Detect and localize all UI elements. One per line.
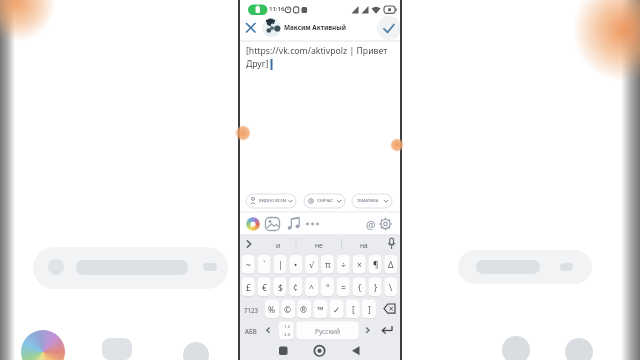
staticText: ~: [246, 259, 251, 271]
staticText: ^: [309, 282, 314, 294]
button[interactable]: |: [274, 255, 287, 274]
staticText: ✓: [333, 305, 341, 315]
button[interactable]: [242, 237, 255, 251]
staticText: ]: [368, 304, 371, 316]
button[interactable]: 7123: [239, 300, 263, 319]
button[interactable]: АБВ: [239, 322, 263, 340]
staticText: •: [294, 259, 298, 271]
button[interactable]: [304, 194, 345, 208]
button[interactable]: [246, 194, 296, 208]
button[interactable]: [377, 16, 401, 40]
button[interactable]: ™: [313, 300, 327, 319]
button[interactable]: `: [258, 255, 271, 274]
button[interactable]: [262, 18, 281, 37]
button[interactable]: [246, 217, 260, 231]
button[interactable]: ÷: [337, 255, 350, 274]
button[interactable]: ®: [297, 300, 311, 319]
button[interactable]: {: [353, 278, 366, 297]
button[interactable]: [285, 215, 302, 231]
button[interactable]: 1 2: [279, 322, 294, 332]
button[interactable]: }: [369, 278, 382, 297]
button[interactable]: [265, 217, 280, 231]
button[interactable]: π: [321, 255, 334, 274]
staticText: ТЕМАТИКА: [357, 198, 379, 204]
button[interactable]: ×: [353, 255, 366, 274]
staticText: 7123: [244, 306, 259, 314]
button[interactable]: √: [305, 255, 318, 274]
button[interactable]: Максим Активный: [284, 23, 346, 32]
button[interactable]: °: [321, 278, 334, 297]
staticText: [: [352, 304, 355, 316]
staticText: на: [360, 241, 368, 250]
button[interactable]: €: [258, 278, 271, 297]
staticText: |: [278, 259, 283, 271]
button[interactable]: $: [274, 278, 287, 297]
button[interactable]: ~: [242, 255, 255, 274]
staticText: π: [325, 259, 331, 271]
staticText: 3 4: [284, 332, 290, 338]
staticText: %: [268, 304, 276, 316]
staticText: Максим Активный: [284, 23, 346, 32]
staticText: СЕЙЧАС: [317, 198, 334, 204]
staticText: @: [366, 218, 376, 232]
button[interactable]: ¢: [289, 278, 302, 297]
button[interactable]: Русский: [296, 322, 359, 340]
staticText: `: [263, 259, 266, 271]
staticText: 11:16: [269, 5, 285, 13]
staticText: ©: [284, 304, 292, 316]
staticText: [https://vk.com/aktivpolz | Привет: [246, 45, 388, 57]
button[interactable]: не: [315, 241, 323, 250]
button[interactable]: СЕЙЧАС: [317, 198, 334, 204]
staticText: ¶: [373, 259, 379, 271]
button[interactable]: [263, 322, 275, 338]
button[interactable]: [378, 217, 393, 231]
button[interactable]: [303, 217, 320, 231]
button[interactable]: [309, 341, 329, 360]
button[interactable]: %: [265, 300, 279, 319]
button[interactable]: [: [346, 300, 360, 319]
button[interactable]: ]: [362, 300, 376, 319]
button[interactable]: [273, 341, 293, 360]
button[interactable]: •: [289, 255, 302, 274]
staticText: не: [315, 241, 323, 250]
button[interactable]: [378, 322, 396, 338]
button[interactable]: и: [276, 241, 281, 250]
button[interactable]: 11:16: [269, 5, 285, 13]
staticText: Друг]: [246, 58, 269, 70]
button[interactable]: @: [366, 218, 376, 232]
staticText: =: [341, 282, 346, 294]
button[interactable]: [242, 19, 260, 37]
button[interactable]: \: [384, 278, 397, 297]
button[interactable]: £: [242, 278, 255, 297]
staticText: √: [309, 260, 315, 270]
button[interactable]: [385, 236, 398, 251]
staticText: ®: [300, 304, 308, 316]
button[interactable]: Друг]: [246, 58, 269, 70]
staticText: \: [389, 282, 393, 294]
staticText: ×: [357, 259, 362, 271]
button[interactable]: Δ: [384, 255, 397, 274]
staticText: Δ: [388, 259, 394, 271]
button[interactable]: ^: [305, 278, 318, 297]
button[interactable]: [346, 341, 366, 360]
button[interactable]: [https://vk.com/aktivpolz | Привет: [246, 45, 388, 57]
button[interactable]: [352, 194, 392, 208]
button[interactable]: ✓: [330, 300, 344, 319]
button[interactable]: на: [360, 241, 368, 250]
button[interactable]: ©: [281, 300, 295, 319]
button[interactable]: 3 4: [279, 330, 294, 340]
button[interactable]: ¶: [369, 255, 382, 274]
button[interactable]: [239, 42, 401, 187]
button[interactable]: ТЕМАТИКА: [357, 198, 379, 204]
staticText: ™: [317, 304, 324, 316]
button[interactable]: ВИДНО ВСЕМ: [259, 198, 287, 204]
staticText: 1 2: [284, 324, 290, 330]
staticText: ÷: [341, 259, 346, 271]
staticText: °: [326, 282, 330, 294]
staticText: ВИДНО ВСЕМ: [259, 198, 287, 204]
button[interactable]: [364, 216, 378, 232]
button[interactable]: [380, 300, 398, 318]
staticText: Русский: [315, 327, 340, 336]
button[interactable]: [362, 322, 374, 338]
button[interactable]: =: [337, 278, 350, 297]
